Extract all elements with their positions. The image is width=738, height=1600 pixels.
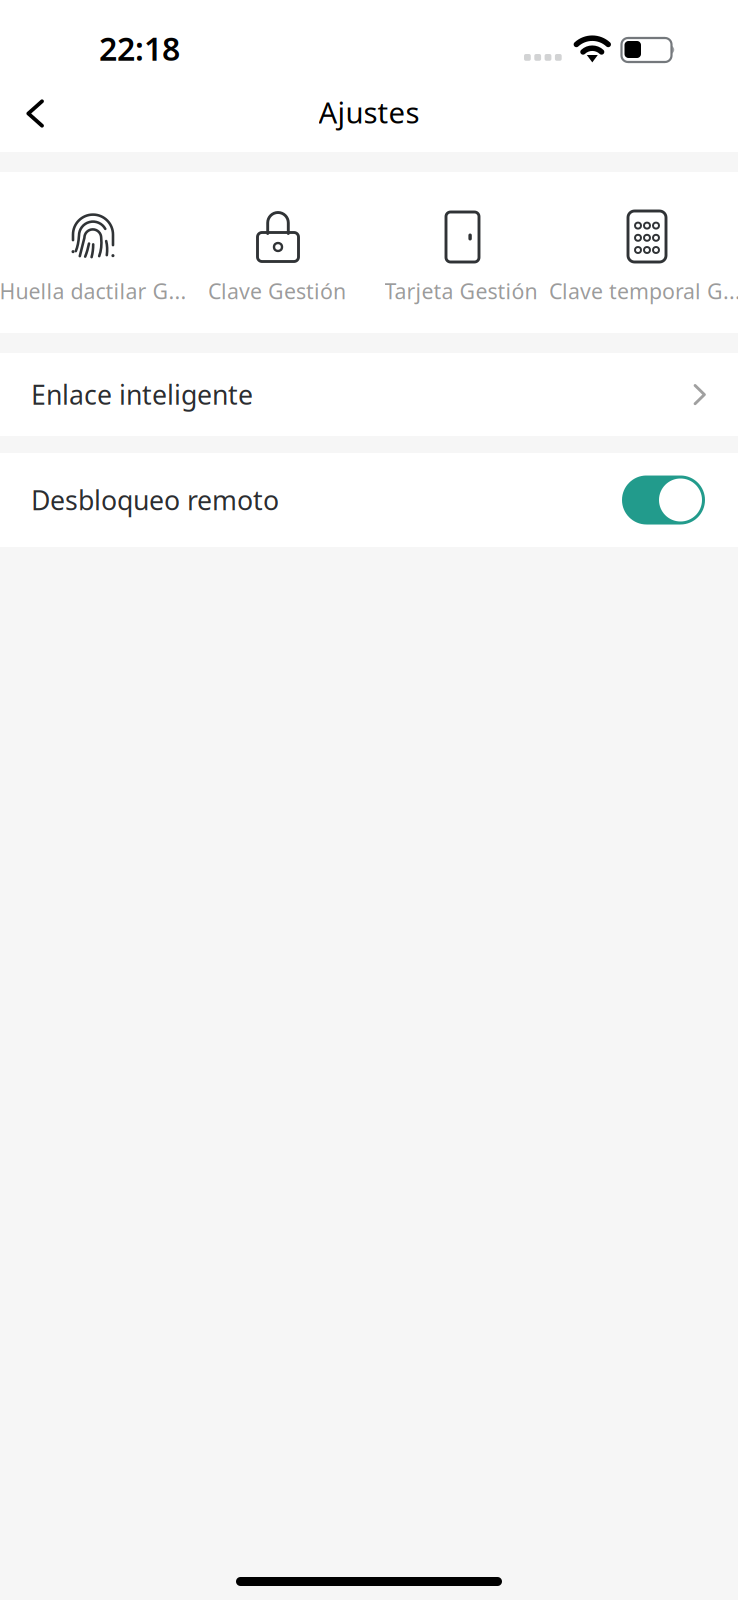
button[interactable]: Clave Gestión (185, 172, 369, 333)
staticText: Tarjeta Gestión (384, 277, 537, 305)
button[interactable]: Enlace inteligente (0, 353, 738, 436)
button[interactable]: Back (0, 84, 70, 142)
button[interactable]: Desbloqueo remoto (622, 475, 705, 524)
button[interactable]: Clave temporal G... (553, 172, 737, 333)
button[interactable]: Huella dactilar G... (1, 172, 185, 333)
staticText: 22:18 (99, 27, 180, 69)
staticText: Clave Gestión (208, 277, 346, 305)
staticText: Huella dactilar G... (0, 277, 186, 305)
staticText: Desbloqueo remoto (31, 482, 279, 518)
staticText: Enlace inteligente (31, 377, 253, 412)
staticText: Clave temporal G... (549, 277, 738, 305)
button[interactable]: Tarjeta Gestión (369, 172, 553, 333)
staticText: Ajustes (318, 92, 419, 131)
